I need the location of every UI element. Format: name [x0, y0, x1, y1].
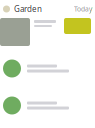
- staticText: Garden: [14, 4, 42, 14]
- button[interactable]: Profile: [3, 5, 10, 12]
- staticText: Today: [74, 5, 92, 13]
